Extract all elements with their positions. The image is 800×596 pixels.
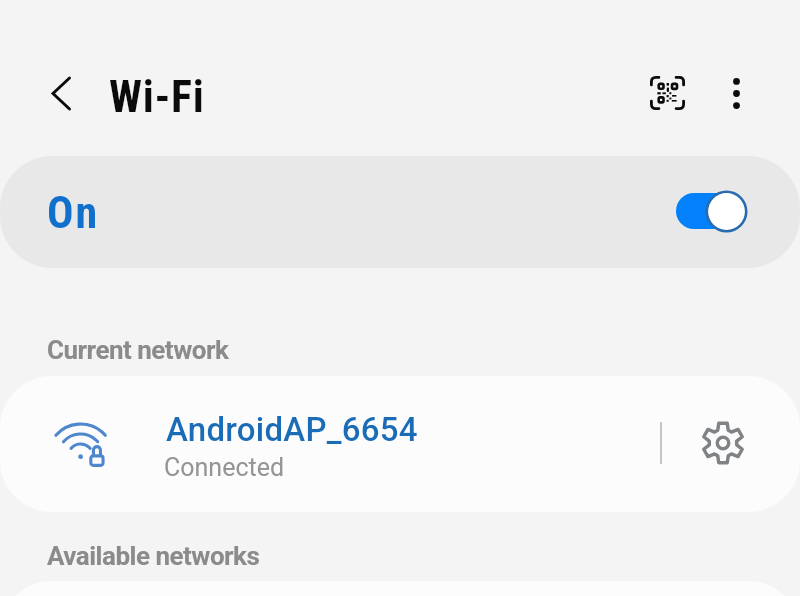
staticText: On xyxy=(47,187,100,239)
button[interactable]: More options xyxy=(708,65,765,122)
button[interactable]: Network settings xyxy=(678,382,767,503)
staticText: Current network xyxy=(47,335,229,365)
staticText: AndroidAP_6654 xyxy=(166,410,418,449)
button[interactable]: Scan QR code xyxy=(639,65,695,121)
button[interactable]: On xyxy=(0,156,800,268)
staticText: Wi-Fi xyxy=(109,71,205,123)
button[interactable]: AndroidAP_6654 xyxy=(0,376,655,512)
staticText: Available networks xyxy=(47,541,260,571)
button[interactable]: Wi-Fi on xyxy=(676,190,747,233)
button[interactable]: Navigate up xyxy=(36,60,102,126)
staticText: Connected xyxy=(164,453,285,482)
